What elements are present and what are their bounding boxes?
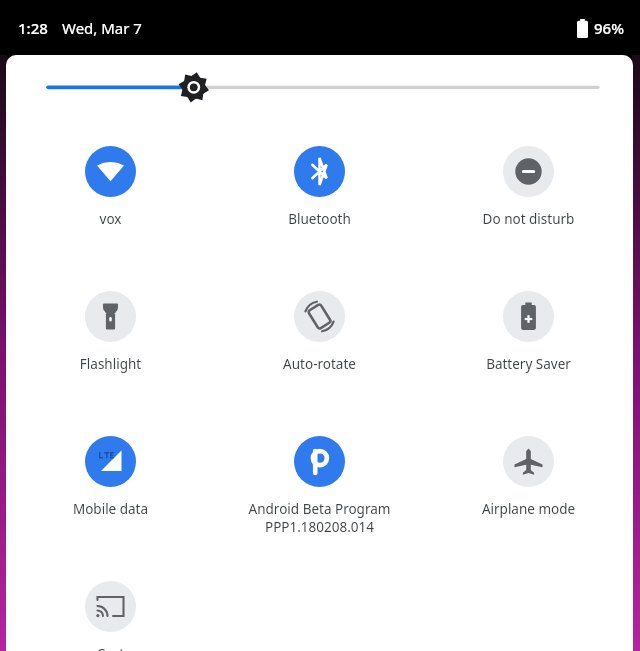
button[interactable]: Battery Saver — [424, 277, 633, 422]
staticText: Battery Saver — [428, 355, 629, 373]
button[interactable]: Android Beta Program — [215, 422, 424, 567]
staticText: 96% — [594, 18, 624, 38]
staticText: PPP1.180208.014 — [215, 518, 424, 536]
button[interactable] — [6, 55, 633, 132]
staticText: Wed, Mar 7 — [62, 18, 142, 38]
button[interactable]: Do not disturb — [424, 132, 633, 277]
staticText: Android Beta Program — [219, 500, 420, 518]
staticText: Flashlight — [10, 355, 211, 373]
button[interactable]: Flashlight — [6, 277, 215, 422]
button[interactable]: vox — [6, 132, 215, 277]
button[interactable]: Airplane mode — [424, 422, 633, 567]
staticText: Mobile data — [10, 500, 211, 518]
button[interactable]: Auto-rotate — [215, 277, 424, 422]
staticText: vox — [10, 210, 211, 228]
staticText: Do not disturb — [428, 210, 629, 228]
staticText: Cast — [10, 645, 211, 651]
button[interactable]: Bluetooth — [215, 132, 424, 277]
staticText: Auto-rotate — [219, 355, 420, 373]
staticText: Bluetooth — [219, 210, 420, 228]
staticText: Airplane mode — [428, 500, 629, 518]
staticText: 1:28 — [18, 18, 48, 38]
button[interactable]: Mobile data — [6, 422, 215, 567]
button[interactable]: Cast — [6, 567, 215, 651]
